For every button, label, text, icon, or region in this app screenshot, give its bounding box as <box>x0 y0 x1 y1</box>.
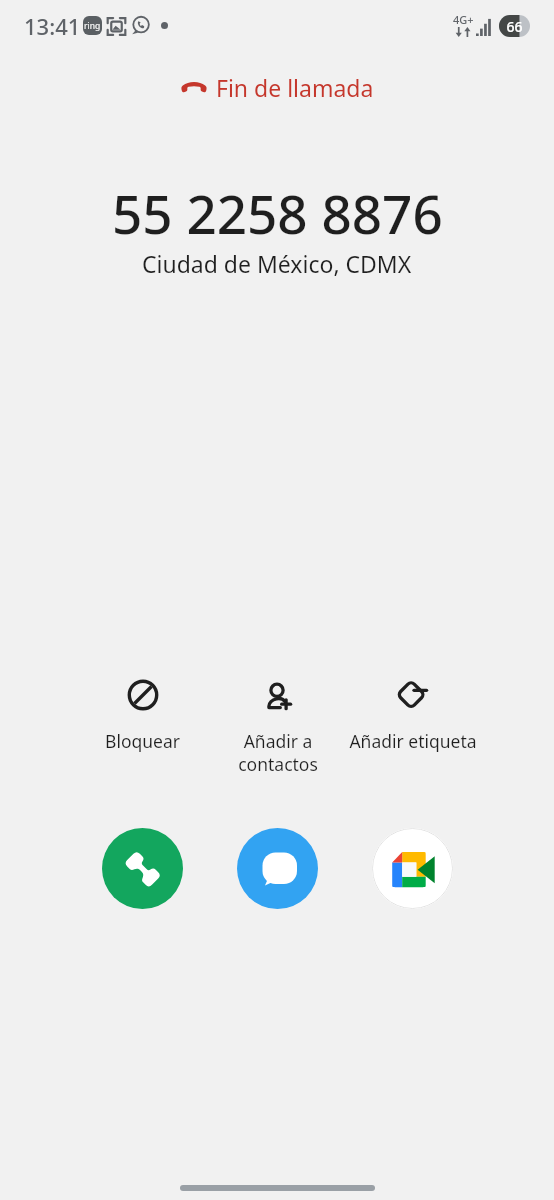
button[interactable]: Llamar <box>102 828 183 909</box>
staticText: 4G+ <box>453 12 474 27</box>
staticText: 13:41 <box>24 11 81 41</box>
button[interactable]: Añadir a contactos <box>210 679 345 776</box>
staticText: Ciudad de México, CDMX <box>142 248 412 279</box>
button[interactable]: Enviar mensaje <box>237 828 318 909</box>
staticText: 66 <box>506 17 523 36</box>
staticText: 55 2258 8876 <box>112 177 443 249</box>
staticText: ring <box>84 20 101 32</box>
button[interactable]: Añadir etiqueta <box>345 679 480 753</box>
staticText: Fin de llamada <box>216 72 374 103</box>
staticText: Bloquear <box>105 729 180 753</box>
staticText: Añadir etiqueta <box>349 729 477 753</box>
button[interactable]: Videollamada <box>372 828 453 909</box>
staticText: Añadir a contactos <box>238 729 318 776</box>
button[interactable]: Bloquear <box>75 679 210 753</box>
